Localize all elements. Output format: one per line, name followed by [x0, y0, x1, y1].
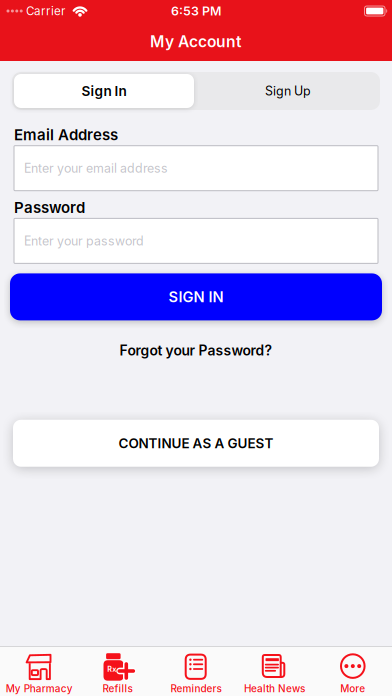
staticText: Carrier: [26, 4, 65, 18]
staticText: Forgot your Password?: [119, 342, 272, 359]
staticText: Enter your email address: [24, 161, 168, 175]
staticText: Health News: [244, 683, 305, 694]
staticText: Enter your password: [24, 234, 144, 248]
staticText: More: [340, 683, 365, 694]
button[interactable]: Sign Up: [196, 72, 380, 110]
button[interactable]: Rx: [78, 647, 157, 696]
staticText: Reminders: [170, 683, 221, 694]
button[interactable]: Email Address text field: [0, 146, 392, 191]
button[interactable]: Sign In: [14, 74, 194, 108]
staticText: My Account: [150, 32, 242, 51]
button[interactable]: Password text field: [0, 218, 392, 263]
staticText: Email Address: [14, 126, 118, 144]
staticText: 6:53 PM: [171, 4, 221, 18]
staticText: Sign In: [81, 83, 126, 99]
button[interactable]: Health News: [235, 647, 314, 696]
staticText: My Pharmacy: [6, 683, 73, 694]
staticText: SIGN IN: [168, 288, 223, 305]
button[interactable]: Reminders: [157, 647, 235, 696]
staticText: Password: [14, 199, 85, 216]
staticText: Rx: [107, 665, 116, 673]
button[interactable]: My Pharmacy: [0, 647, 78, 696]
button[interactable]: Forgot your Password?: [119, 342, 272, 359]
staticText: Sign Up: [265, 84, 311, 98]
button[interactable]: CONTINUE AS A GUEST: [13, 420, 379, 467]
button[interactable]: More: [314, 647, 392, 696]
button[interactable]: SIGN IN: [10, 273, 382, 320]
staticText: Refills: [103, 683, 133, 694]
staticText: CONTINUE AS A GUEST: [118, 435, 273, 451]
